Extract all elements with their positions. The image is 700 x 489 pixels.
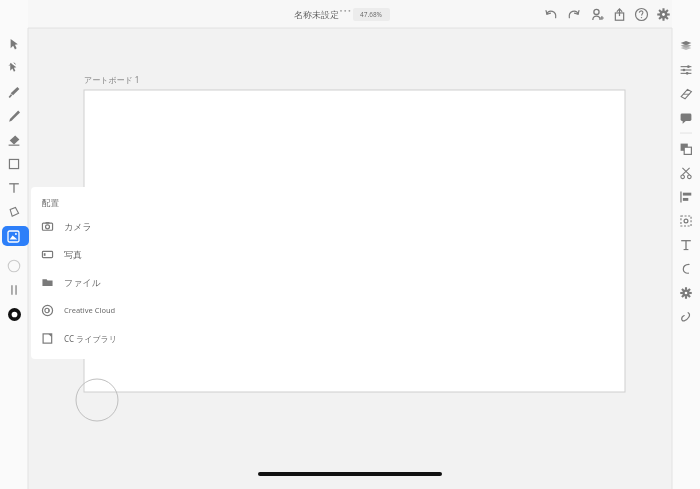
- button[interactable]: Add user: [586, 3, 608, 25]
- staticText: 配置: [42, 198, 59, 209]
- button[interactable]: Redo: [562, 3, 584, 25]
- button[interactable]: Type: [674, 233, 698, 257]
- button[interactable]: Eraser: [2, 128, 26, 152]
- button[interactable]: Brush: [2, 80, 26, 104]
- button[interactable]: Colour: [2, 254, 26, 278]
- staticText: Creative Cloud: [64, 305, 116, 315]
- staticText: 47.68%: [360, 10, 383, 19]
- button[interactable]: Select: [2, 32, 26, 56]
- button[interactable]: Blend: [2, 278, 26, 302]
- button[interactable]: Layers: [674, 34, 698, 58]
- button[interactable]: Help: [630, 3, 652, 25]
- button[interactable]: Undo: [540, 3, 562, 25]
- button[interactable]: Settings: [652, 3, 674, 25]
- button[interactable]: CC ライブラリ: [31, 324, 152, 352]
- button[interactable]: Perspective: [674, 82, 698, 106]
- staticText: CC ライブラリ: [64, 333, 117, 344]
- staticText: 写真: [64, 249, 82, 260]
- button[interactable]: 名称未設定: [294, 9, 348, 20]
- button[interactable]: Cut: [674, 161, 698, 185]
- button[interactable]: Link: [674, 305, 698, 329]
- button[interactable]: Adjust: [674, 58, 698, 82]
- button[interactable]: Comment: [674, 106, 698, 130]
- button[interactable]: Colour swatch: [2, 302, 26, 326]
- button[interactable]: Effects: [674, 281, 698, 305]
- staticText: アートボード 1: [84, 74, 140, 85]
- staticText: ファイル: [64, 277, 101, 288]
- button[interactable]: Shape: [2, 152, 26, 176]
- button[interactable]: Text: [2, 176, 26, 200]
- button[interactable]: カメラ: [31, 212, 152, 240]
- button[interactable]: Magic select: [2, 56, 26, 80]
- button[interactable]: Creative Cloud: [31, 296, 152, 324]
- button[interactable]: Transform: [2, 200, 26, 224]
- button[interactable]: Align: [674, 185, 698, 209]
- button[interactable]: Share: [608, 3, 630, 25]
- button[interactable]: 47.68%: [353, 8, 390, 21]
- button[interactable]: Place image: [0, 224, 28, 248]
- button[interactable]: ファイル: [31, 268, 152, 296]
- staticText: 名称未設定: [294, 9, 339, 20]
- button[interactable]: Duplicate: [674, 137, 698, 161]
- staticText: カメラ: [64, 221, 92, 232]
- button[interactable]: Curve: [674, 257, 698, 281]
- button[interactable]: Crop: [674, 209, 698, 233]
- button[interactable]: Pencil: [2, 104, 26, 128]
- button[interactable]: 写真: [31, 240, 152, 268]
